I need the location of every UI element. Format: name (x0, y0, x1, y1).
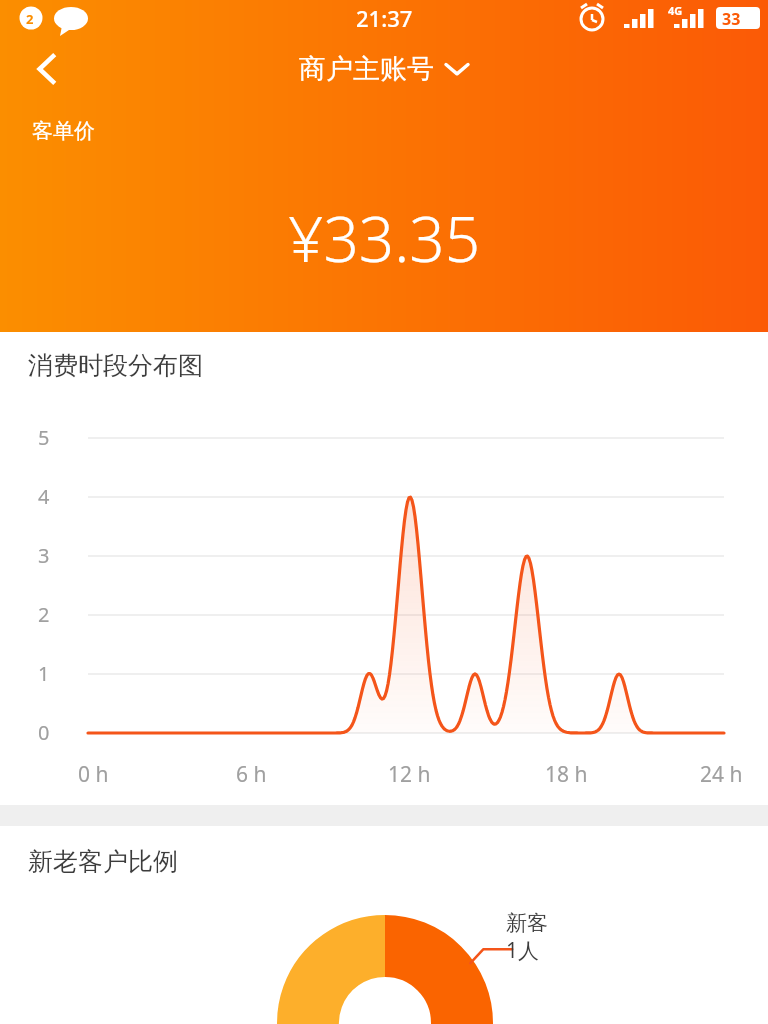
staticText: ¥33.35 (288, 196, 481, 280)
staticText: 0 (38, 719, 50, 746)
staticText: 商户主账号 (299, 52, 434, 86)
button[interactable]: 商户主账号 (299, 52, 470, 86)
staticText: 新老客户比例 (28, 846, 178, 877)
staticText: 12 h (388, 760, 431, 789)
staticText: 33 (722, 8, 741, 30)
staticText: 3 (38, 542, 50, 569)
staticText: 2 (26, 10, 34, 28)
staticText: 4G (668, 3, 683, 18)
staticText: 21:37 (356, 3, 413, 33)
staticText: 24 h (700, 760, 743, 789)
staticText: 2 (38, 601, 50, 628)
staticText: 6 h (236, 760, 267, 789)
staticText: 18 h (545, 760, 588, 789)
staticText: 客单价 (32, 118, 95, 144)
staticText: 1 (38, 660, 50, 687)
staticText: 消费时段分布图 (28, 350, 203, 381)
staticText: 0 h (78, 760, 109, 789)
staticText: 新客 (506, 910, 548, 936)
staticText: 1人 (506, 936, 540, 965)
button[interactable]: Back (14, 36, 80, 102)
staticText: 4 (38, 483, 50, 510)
staticText: 5 (38, 424, 50, 451)
